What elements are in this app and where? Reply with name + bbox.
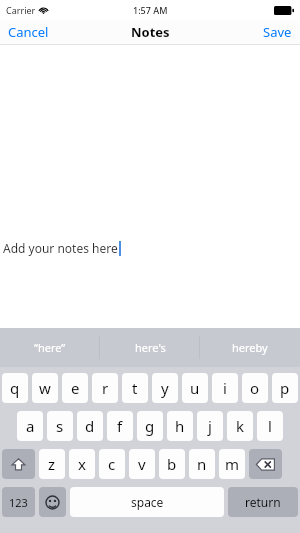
button[interactable]: Emoji [39,487,66,517]
staticText: i [223,378,227,398]
button[interactable]: l [257,411,283,441]
button[interactable]: e [62,373,88,403]
staticText: z [48,454,56,474]
staticText: x [78,454,86,474]
staticText: Save [263,23,292,41]
button[interactable]: q [2,373,28,403]
staticText: 123 [9,495,28,510]
staticText: r [102,378,109,398]
button[interactable]: w [32,373,58,403]
staticText: t [132,378,138,398]
staticText: p [280,378,290,398]
button[interactable]: s [47,411,73,441]
staticText: l [268,416,272,436]
button[interactable]: m [219,449,245,479]
button[interactable]: Cancel [8,20,49,44]
button[interactable]: here's [100,328,200,367]
button[interactable]: h [167,411,193,441]
button[interactable]: 123 [2,487,35,517]
staticText: j [208,416,212,436]
staticText: f [117,416,123,436]
staticText: n [197,454,207,474]
button[interactable]: p [272,373,298,403]
staticText: space [131,494,164,510]
staticText: a [26,416,35,436]
staticText: hereby [232,340,268,355]
staticText: 1:57 AM [133,4,168,16]
button[interactable]: y [152,373,178,403]
button[interactable]: u [182,373,208,403]
button[interactable]: t [122,373,148,403]
staticText: y [161,378,169,398]
button[interactable]: z [39,449,65,479]
button[interactable]: Shift [2,449,35,479]
button[interactable]: x [69,449,95,479]
button[interactable]: f [107,411,133,441]
button[interactable]: r [92,373,118,403]
button[interactable]: j [197,411,223,441]
button[interactable]: k [227,411,253,441]
staticText: d [85,416,95,436]
staticText: u [190,378,200,398]
staticText: b [167,454,177,474]
button[interactable]: Add your notes here [0,45,300,328]
staticText: h [175,416,185,436]
button[interactable]: v [129,449,155,479]
button[interactable]: g [137,411,163,441]
staticText: v [138,454,146,474]
staticText: e [71,378,80,398]
staticText: q [10,378,20,398]
button[interactable]: i [212,373,238,403]
staticText: g [145,416,155,436]
button[interactable]: Backspace [249,449,282,479]
staticText: k [236,416,245,436]
button[interactable]: Save [263,20,292,44]
staticText: Add your notes here [3,240,118,256]
staticText: here's [135,340,166,355]
button[interactable]: d [77,411,103,441]
staticText: m [225,454,240,474]
button[interactable]: n [189,449,215,479]
staticText: “here” [34,340,66,355]
staticText: w [39,378,51,398]
staticText: c [108,454,116,474]
button[interactable]: c [99,449,125,479]
staticText: return [245,494,281,510]
staticText: Notes [131,23,170,41]
staticText: Carrier [6,4,36,16]
button[interactable]: return [228,487,298,517]
button[interactable]: b [159,449,185,479]
button[interactable]: hereby [200,328,300,367]
button[interactable]: o [242,373,268,403]
staticText: s [56,416,64,436]
button[interactable]: “here” [0,328,100,367]
staticText: Cancel [8,23,49,41]
button[interactable]: space [70,487,224,517]
staticText: o [250,378,260,398]
button[interactable]: a [17,411,43,441]
